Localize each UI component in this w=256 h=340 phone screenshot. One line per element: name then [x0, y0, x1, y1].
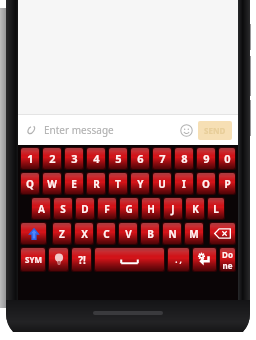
staticText: 0 [224, 151, 231, 166]
button[interactable]: P [219, 173, 235, 194]
button[interactable]: M [185, 223, 203, 244]
staticText: E [71, 177, 77, 191]
button[interactable]: E [65, 173, 83, 194]
button[interactable]: W [43, 173, 61, 194]
button[interactable]: 7 [153, 148, 171, 169]
staticText: O [202, 177, 210, 191]
staticText: P [224, 177, 231, 191]
button[interactable]: 3 [65, 148, 83, 169]
button[interactable]: K [186, 198, 204, 219]
button[interactable]: ?! [72, 248, 91, 271]
button[interactable]: X [75, 223, 93, 244]
staticText: V [125, 227, 132, 241]
staticText: H [147, 202, 155, 216]
button[interactable]: Y [131, 173, 149, 194]
button[interactable]: F [98, 198, 116, 219]
button[interactable]: Backspace [210, 223, 235, 244]
staticText: A [38, 202, 45, 216]
button[interactable]: 6 [131, 148, 149, 169]
staticText: L [213, 202, 219, 216]
button[interactable]: Emoji [178, 122, 194, 138]
staticText: SEND [204, 125, 226, 136]
staticText: K [192, 202, 199, 216]
staticText: ?! [78, 253, 86, 267]
button[interactable]: Enter message [44, 123, 178, 137]
staticText: Y [137, 177, 144, 191]
staticText: F [104, 202, 110, 216]
button[interactable]: G [120, 198, 138, 219]
button[interactable]: H [142, 198, 160, 219]
button[interactable]: B [141, 223, 159, 244]
button[interactable]: A [32, 198, 50, 219]
button[interactable]: D [76, 198, 94, 219]
staticText: W [47, 177, 57, 191]
staticText: U [158, 177, 166, 191]
staticText: Done [220, 249, 235, 271]
button[interactable]: Enter [193, 248, 216, 271]
staticText: Q [26, 177, 34, 191]
staticText: 6 [137, 151, 144, 166]
button[interactable]: . , [168, 248, 189, 271]
staticText: G [125, 202, 133, 216]
button[interactable]: 8 [175, 148, 193, 169]
button[interactable]: Theme [49, 248, 68, 271]
button[interactable]: Q [21, 173, 39, 194]
button[interactable]: R [87, 173, 105, 194]
staticText: X [81, 227, 88, 241]
button[interactable]: SYM [21, 248, 45, 271]
staticText: J [171, 202, 175, 216]
staticText: . , [175, 254, 182, 265]
staticText: 7 [159, 151, 166, 166]
staticText: N [168, 227, 177, 241]
button[interactable]: O [197, 173, 215, 194]
staticText: 2 [49, 151, 56, 166]
staticText: 4 [93, 151, 100, 166]
button[interactable]: 0 [219, 148, 235, 169]
button[interactable]: 9 [197, 148, 215, 169]
staticText: 9 [203, 151, 210, 166]
staticText: M [189, 227, 199, 241]
button[interactable]: V [119, 223, 137, 244]
staticText: S [60, 202, 66, 216]
button[interactable]: N [163, 223, 181, 244]
button[interactable]: I [175, 173, 193, 194]
button[interactable]: Attach file [24, 123, 38, 137]
staticText: T [115, 177, 121, 191]
button[interactable]: S [54, 198, 72, 219]
staticText: R [93, 177, 100, 191]
button[interactable]: C [97, 223, 115, 244]
button[interactable]: 4 [87, 148, 105, 169]
staticText: Z [59, 227, 65, 241]
staticText: B [147, 227, 154, 241]
button[interactable]: SEND [198, 121, 232, 140]
button[interactable]: Done [220, 248, 235, 271]
button[interactable]: 1 [21, 148, 39, 169]
button[interactable]: Shift [21, 223, 46, 244]
button[interactable]: J [164, 198, 182, 219]
staticText: I [182, 177, 186, 191]
staticText: SYM [25, 254, 42, 265]
button[interactable]: 5 [109, 148, 127, 169]
staticText: 5 [115, 151, 122, 166]
staticText: 8 [181, 151, 188, 166]
staticText: D [81, 202, 89, 216]
staticText: 3 [71, 151, 78, 166]
staticText: 1 [27, 151, 34, 166]
button[interactable]: 2 [43, 148, 61, 169]
button[interactable]: T [109, 173, 127, 194]
button[interactable]: L [208, 198, 224, 219]
button[interactable]: U [153, 173, 171, 194]
staticText: C [103, 227, 110, 241]
button[interactable]: Z [53, 223, 71, 244]
button[interactable]: Space [95, 248, 164, 271]
